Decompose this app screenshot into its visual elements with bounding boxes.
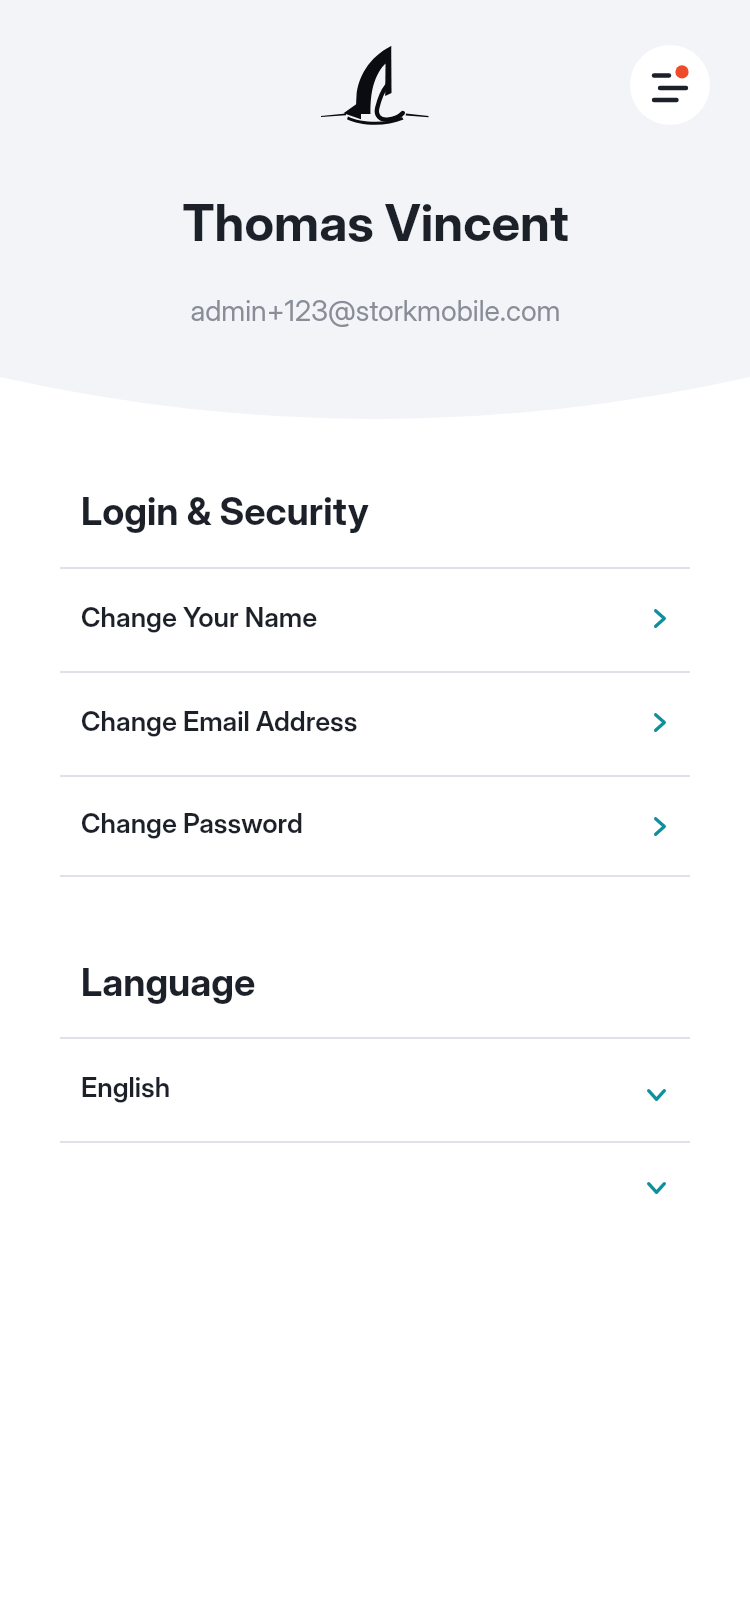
button[interactable]: Select language bbox=[60, 1143, 690, 1245]
staticText: Change Password bbox=[81, 807, 303, 840]
staticText: Change Email Address bbox=[81, 705, 358, 738]
staticText: Language bbox=[81, 959, 256, 1005]
button[interactable]: English bbox=[60, 1039, 690, 1141]
button[interactable]: Change Password bbox=[60, 777, 690, 875]
staticText: English bbox=[81, 1071, 171, 1104]
staticText: Thomas Vincent bbox=[182, 192, 569, 254]
button[interactable]: Change Your Name bbox=[60, 569, 690, 671]
staticText: Login & Security bbox=[81, 488, 369, 534]
button[interactable]: Change Email Address bbox=[60, 673, 690, 775]
staticText: Change Your Name bbox=[81, 601, 318, 634]
staticText: admin+123@storkmobile.com bbox=[190, 293, 561, 327]
button[interactable]: Open menu bbox=[630, 45, 710, 125]
